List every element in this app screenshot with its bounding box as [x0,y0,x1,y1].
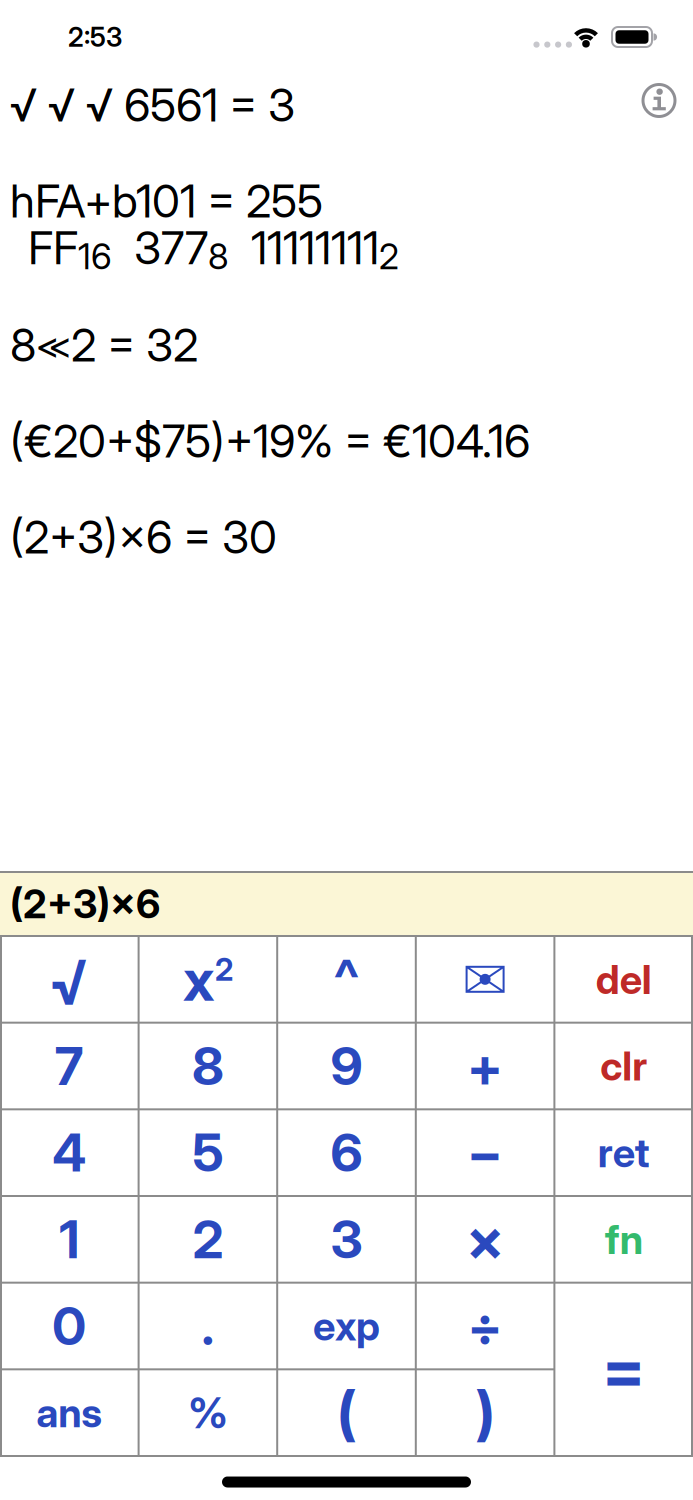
staticText: 3 [330,1208,362,1271]
button[interactable]: 4 [0,1109,139,1196]
button[interactable]: . [139,1283,277,1369]
staticText: ret [598,1128,650,1177]
button[interactable]: ret [554,1109,693,1196]
button[interactable]: del [554,936,693,1023]
button[interactable]: + [416,1023,554,1109]
staticText: ^ [333,945,359,1013]
staticText: − [467,1120,503,1186]
staticText: 8 [192,1034,224,1097]
button[interactable]: ( [277,1369,416,1456]
staticText: (2+3)×6 [10,880,160,928]
staticText: 2:53 [68,21,122,53]
button[interactable]: = [554,1283,693,1456]
staticText: exp [313,1302,380,1350]
button[interactable]: − [416,1109,554,1196]
button[interactable]: 8 [139,1023,277,1109]
staticText: √ √ √ 6561 = 3 [10,78,295,132]
staticText: (2+3)×6 = 30 [10,510,277,564]
staticText: ( [337,1377,356,1448]
button[interactable]: ) [416,1369,554,1456]
staticText: 9 [330,1034,362,1097]
staticText: 7 [55,1034,84,1097]
button[interactable]: 2 [139,1196,277,1283]
button[interactable]: Mail [416,936,554,1023]
button[interactable]: 6 [277,1109,416,1196]
button[interactable]: 1 [0,1196,139,1283]
button[interactable]: 3 [277,1196,416,1283]
staticText: = [602,1329,646,1410]
staticText: 6 [330,1121,362,1184]
button[interactable]: 7 [0,1023,139,1109]
button[interactable]: ans [0,1369,139,1456]
staticText: 8≪2 = 32 [10,318,198,372]
staticText: . [201,1294,214,1357]
staticText: 0 [52,1294,86,1357]
staticText: + [467,1033,503,1099]
staticText: 4 [52,1121,86,1184]
button[interactable]: √ [0,936,139,1023]
button[interactable]: % [139,1369,277,1456]
button[interactable]: ÷ [416,1283,554,1369]
button[interactable]: clr [554,1023,693,1109]
staticText: 5 [192,1121,223,1184]
button[interactable]: 9 [277,1023,416,1109]
button[interactable]: ^ [277,936,416,1023]
staticText: 1 [59,1208,79,1271]
staticText: x2 [183,945,233,1014]
staticText: FF16 3778 111111112 [28,220,399,278]
staticText: √ [49,945,89,1019]
button[interactable]: fn [554,1196,693,1283]
staticText: ans [36,1388,102,1437]
button[interactable]: x2 [139,936,277,1023]
staticText: fn [605,1215,643,1263]
staticText: hFA+b101 = 255 [10,174,323,228]
button[interactable]: 0 [0,1283,139,1369]
button[interactable]: × [416,1196,554,1283]
staticText: % [188,1387,228,1438]
button[interactable]: Info [637,78,681,122]
button[interactable]: exp [277,1283,416,1369]
staticText: ) [476,1377,495,1448]
button[interactable]: 5 [139,1109,277,1196]
staticText: del [596,955,652,1003]
staticText: × [466,1204,504,1275]
staticText: 2 [192,1208,223,1271]
staticText: clr [600,1042,647,1090]
staticText: ÷ [468,1294,503,1358]
staticText: (€20+$75)+19% = €104.16 [10,414,530,468]
